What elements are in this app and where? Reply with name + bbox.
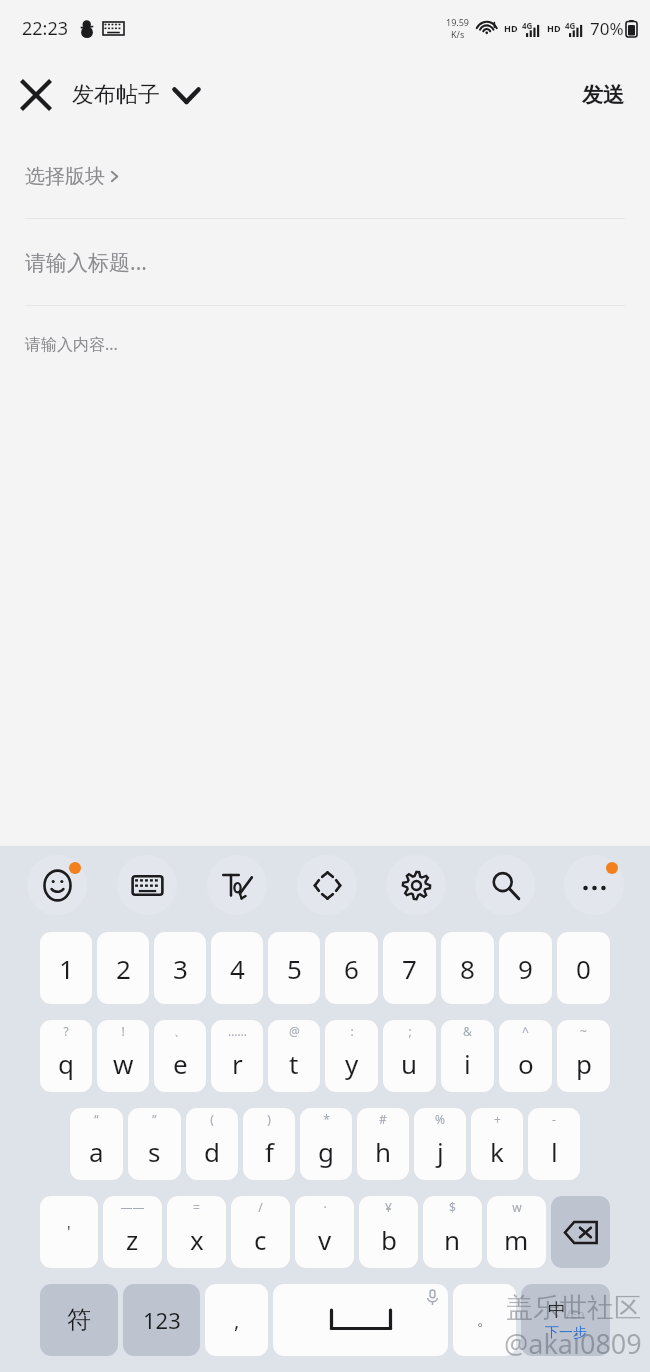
button[interactable]: —— [103,1196,162,1268]
staticText: b [381,1222,397,1257]
staticText: j [437,1134,444,1169]
button[interactable]: …… [211,1020,263,1092]
staticText: —— [120,1199,145,1215]
button[interactable]: ” [128,1108,181,1180]
button[interactable]: Keyboard layout [102,849,192,921]
button[interactable]: 6 [325,932,378,1004]
button[interactable]: $ [423,1196,482,1268]
button[interactable]: ; [383,1020,436,1092]
staticText: + [494,1111,501,1127]
button[interactable]: 0 [557,932,610,1004]
button[interactable]: # [357,1108,409,1180]
staticText: ! [121,1023,125,1039]
button[interactable]: 4 [211,932,263,1004]
button[interactable]: 5 [268,932,320,1004]
staticText: h [375,1134,392,1169]
staticText: 1 [59,951,74,986]
button[interactable]: Backspace [551,1196,610,1268]
staticText: 符 [67,1305,91,1335]
button[interactable]: · [295,1196,354,1268]
staticText: 6 [344,951,359,986]
button[interactable]: ^ [499,1020,552,1092]
button[interactable]: 1 [40,932,92,1004]
button[interactable]: w [487,1196,546,1268]
staticText: e [173,1046,188,1081]
button[interactable]: 123 [123,1284,200,1356]
staticText: r [232,1046,243,1081]
button[interactable]: ¥ [359,1196,418,1268]
staticText: , [234,1307,240,1334]
staticText: $ [449,1199,456,1215]
button[interactable]: ~ [557,1020,610,1092]
staticText: 4 [230,951,245,986]
staticText: 盖乐世社区 [506,1291,641,1325]
staticText: 9 [518,951,533,986]
button[interactable]: : [325,1020,378,1092]
button[interactable]: Settings [371,849,460,921]
button[interactable]: Search [460,849,549,921]
button[interactable]: ? [40,1020,92,1092]
button[interactable]: ( [186,1108,238,1180]
staticText: 3 [173,951,188,986]
staticText: z [126,1222,139,1257]
button[interactable]: ) [243,1108,295,1180]
button[interactable]: 3 [154,932,206,1004]
staticText: w [113,1046,134,1081]
button[interactable]: Resize keyboard [282,849,371,921]
button[interactable]: Handwriting input [192,849,282,921]
staticText: HD [504,22,518,34]
staticText: = [193,1199,200,1215]
button[interactable]: 9 [499,932,552,1004]
staticText: · [323,1199,327,1215]
staticText: 8 [460,951,475,986]
staticText: ; [408,1023,412,1039]
button[interactable]: 发布帖子 [72,81,208,109]
button[interactable]: @ [268,1020,320,1092]
button[interactable]: 8 [441,932,494,1004]
staticText: q [58,1046,74,1081]
staticText: i [464,1046,471,1081]
button[interactable]: * [300,1108,352,1180]
button[interactable]: Close [0,60,72,130]
staticText: 22:23 [22,16,69,41]
staticText: 请输入内容... [25,333,118,355]
staticText: u [401,1046,418,1081]
button[interactable]: 请输入标题... [0,219,650,305]
button[interactable]: 2 [97,932,149,1004]
button[interactable]: 请输入内容... [0,306,650,382]
staticText: t [289,1046,299,1081]
staticText: 0 [576,951,591,986]
button[interactable]: 7 [383,932,436,1004]
button[interactable]: 、 [154,1020,206,1092]
staticText: v [318,1222,332,1257]
button[interactable]: 选择版块 [0,134,650,218]
button[interactable]: ! [97,1020,149,1092]
button[interactable]: - [528,1108,580,1180]
staticText: & [463,1023,472,1039]
staticText: ? [63,1023,69,1039]
button[interactable]: & [441,1020,494,1092]
staticText: s [148,1134,161,1169]
staticText: m [504,1222,529,1257]
button[interactable]: 中 [521,1284,610,1356]
button[interactable]: % [414,1108,466,1180]
button[interactable]: / [231,1196,290,1268]
staticText: ^ [522,1023,529,1039]
button[interactable]: 发送 [556,68,650,122]
staticText: / [258,1199,263,1215]
button[interactable]: “ [70,1108,123,1180]
staticText: c [254,1222,267,1257]
button[interactable]: Emoji [12,849,102,921]
button[interactable]: 符 [40,1284,118,1356]
staticText: 4G [565,20,576,31]
button[interactable]: More options [549,849,638,921]
button[interactable]: + [471,1108,523,1180]
staticText: - [552,1111,556,1127]
staticText: HD [547,22,561,34]
button[interactable]: , [205,1284,268,1356]
button[interactable]: = [167,1196,226,1268]
button[interactable]: Space [273,1284,448,1356]
button[interactable]: ' [40,1196,98,1268]
button[interactable]: 。 [453,1284,516,1356]
staticText: /En [566,1306,585,1322]
